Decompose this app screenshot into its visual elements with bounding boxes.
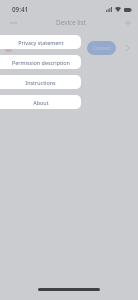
staticText: About <box>33 99 49 106</box>
button[interactable]: Open device <box>121 41 134 55</box>
button[interactable]: More options <box>6 16 20 30</box>
staticText: Privacy statement <box>18 39 64 46</box>
button[interactable]: Privacy statement <box>0 35 81 49</box>
button[interactable]: Connect <box>87 41 116 55</box>
staticText: Device list <box>56 18 87 27</box>
staticText: Connect <box>93 45 111 51</box>
button[interactable]: Add device <box>121 16 135 30</box>
staticText: 09:41 <box>12 5 29 14</box>
staticText: Permission description <box>12 59 70 66</box>
button[interactable]: About <box>0 95 81 109</box>
staticText: Instructions <box>25 79 56 86</box>
button[interactable]: Permission description <box>0 55 81 69</box>
button[interactable]: Instructions <box>0 75 81 89</box>
